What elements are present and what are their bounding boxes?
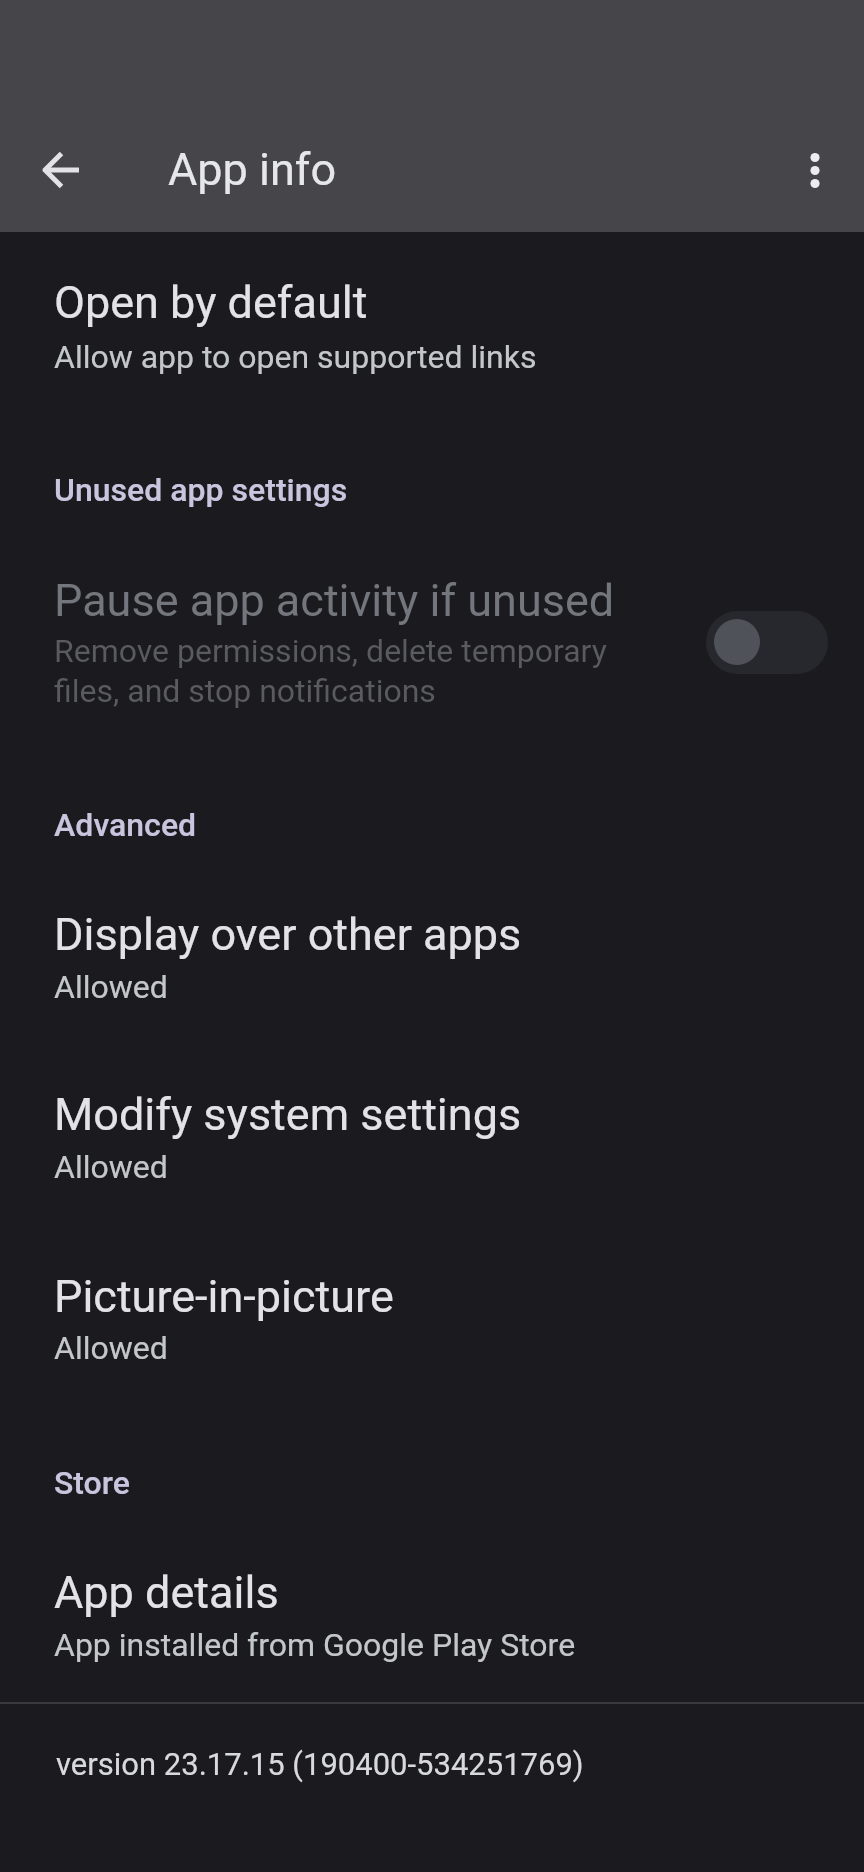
staticText: version 23.17.15 (190400-534251769) xyxy=(56,1746,584,1782)
staticText: App info xyxy=(168,143,337,196)
button[interactable] xyxy=(779,134,851,206)
staticText: files, and stop notifications xyxy=(54,672,436,710)
staticText: Advanced xyxy=(54,806,197,844)
staticText: Picture-in-picture xyxy=(54,1270,394,1323)
staticText: Display over other apps xyxy=(54,908,522,961)
staticText: App installed from Google Play Store xyxy=(54,1626,576,1664)
staticText: Unused app settings xyxy=(54,471,348,509)
button[interactable] xyxy=(26,134,98,206)
staticText: Store xyxy=(54,1464,130,1502)
button[interactable] xyxy=(0,880,864,1040)
staticText: Allow app to open supported links xyxy=(54,338,537,376)
button[interactable] xyxy=(0,1060,864,1220)
staticText: Allowed xyxy=(54,968,168,1006)
button[interactable] xyxy=(0,1538,864,1698)
staticText: App details xyxy=(54,1566,279,1619)
button[interactable] xyxy=(0,1242,864,1402)
staticText: Allowed xyxy=(54,1329,168,1367)
button[interactable] xyxy=(0,244,864,414)
staticText: Allowed xyxy=(54,1148,168,1186)
button[interactable] xyxy=(706,611,828,674)
staticText: Modify system settings xyxy=(54,1088,522,1141)
staticText: Open by default xyxy=(54,276,368,329)
staticText: Remove permissions, delete temporary xyxy=(54,632,607,670)
button[interactable] xyxy=(0,1706,864,1826)
staticText: Pause app activity if unused xyxy=(54,574,615,627)
button[interactable] xyxy=(0,545,864,740)
